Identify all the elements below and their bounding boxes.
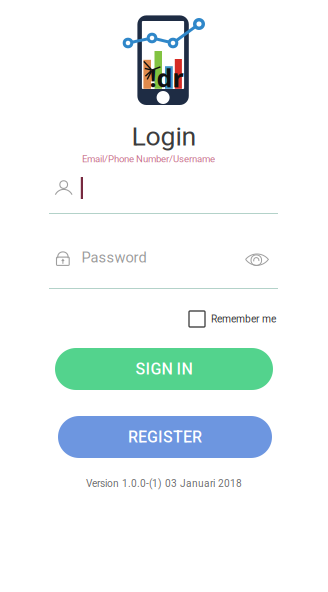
button[interactable]: Show password (245, 252, 269, 268)
button[interactable]: REGISTER (58, 416, 272, 458)
staticText: Login (131, 121, 196, 152)
button[interactable]: SIGN IN (55, 348, 273, 390)
staticText: Remember me (211, 313, 276, 325)
staticText: Email/Phone Number/Username (82, 153, 215, 165)
staticText: REGISTER (128, 428, 202, 446)
staticText: Password (81, 249, 146, 266)
button[interactable]: Remember me (189, 309, 289, 329)
staticText: Version 1.0.0-(1) 03 Januari 2018 (86, 478, 242, 489)
staticText: SIGN IN (135, 360, 192, 378)
staticText: !dr (149, 60, 183, 94)
